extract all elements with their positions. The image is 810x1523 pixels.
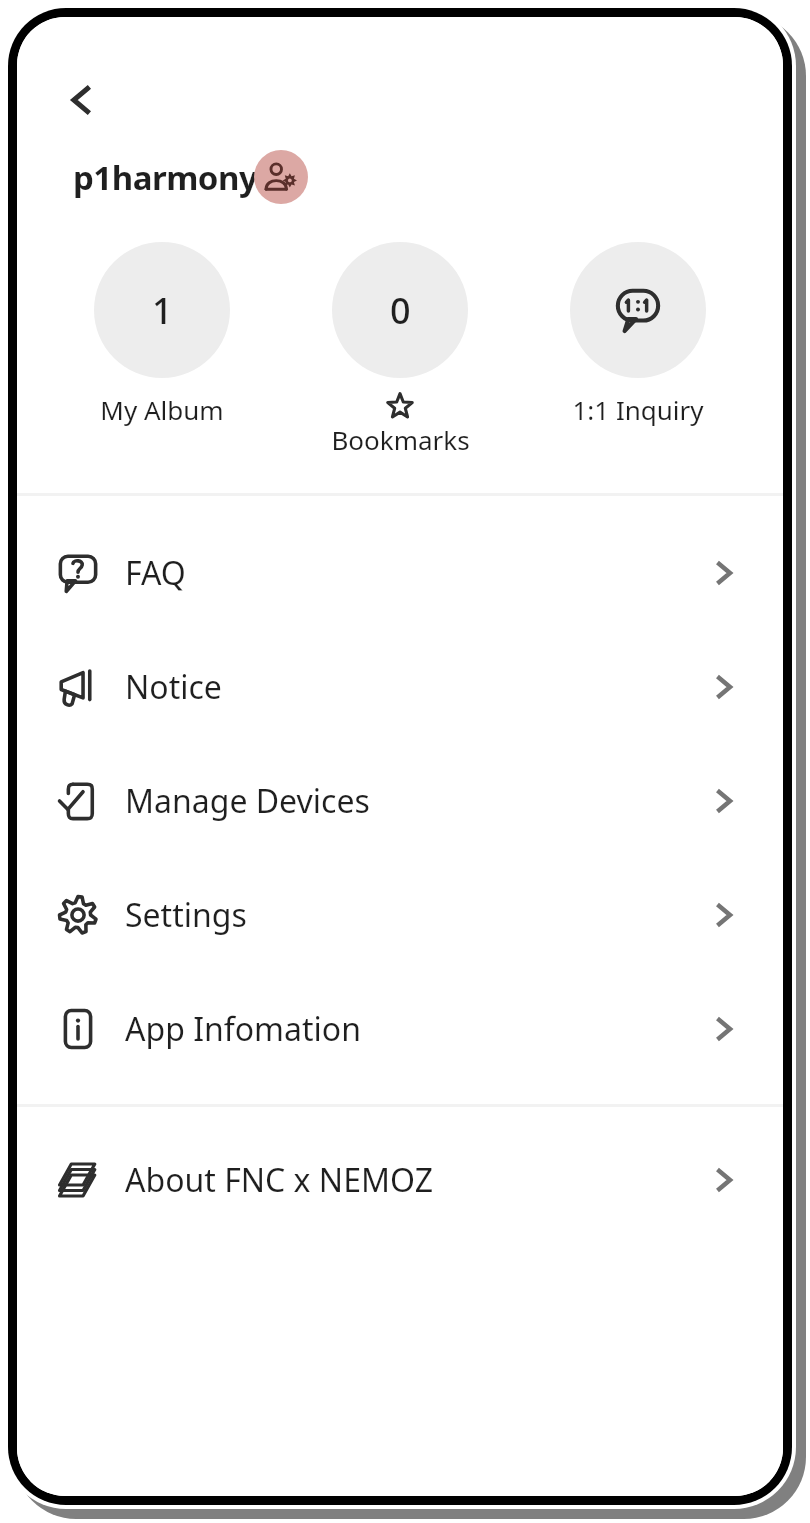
button[interactable]: Notice (17, 630, 783, 744)
button[interactable]: Settings (17, 858, 783, 972)
staticText: FAQ (125, 551, 186, 595)
staticText: My Album (100, 392, 224, 427)
staticText: p1harmony (73, 155, 258, 200)
button[interactable]: App Infomation (17, 972, 783, 1086)
button[interactable]: FAQ (17, 516, 783, 630)
button[interactable]: 1 (43, 242, 281, 427)
button[interactable]: Back (53, 72, 109, 128)
staticText: Settings (125, 893, 247, 937)
staticText: 1:1 Inquiry (572, 392, 704, 427)
staticText: App Infomation (125, 1007, 361, 1051)
button[interactable]: Manage Devices (17, 744, 783, 858)
staticText: About FNC x NEMOZ (125, 1158, 433, 1202)
button[interactable]: About FNC x NEMOZ (17, 1123, 783, 1237)
button[interactable]: 1:1 Inquiry (519, 242, 757, 427)
staticText: 0 (390, 286, 411, 335)
staticText: Notice (125, 665, 222, 709)
button[interactable]: 0 (281, 242, 519, 457)
staticText: Bookmarks (331, 422, 470, 457)
staticText: Manage Devices (125, 779, 370, 823)
staticText: 1 (152, 286, 173, 335)
button[interactable]: Account settings (254, 150, 308, 204)
